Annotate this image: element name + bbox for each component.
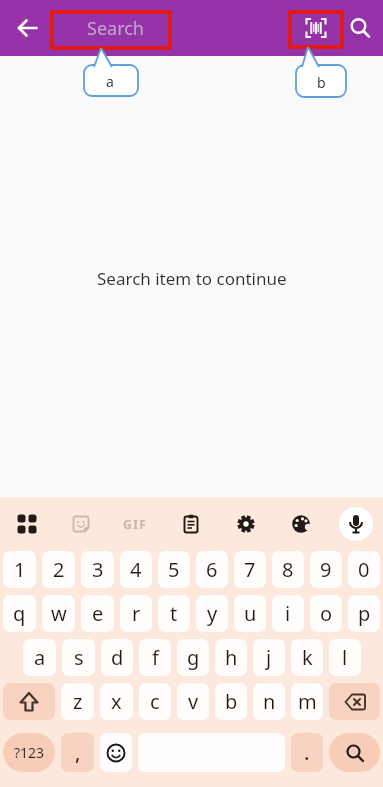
staticText: b: [225, 688, 238, 715]
button[interactable]: j: [253, 639, 285, 676]
staticText: z: [73, 688, 83, 715]
button[interactable]: [329, 733, 380, 772]
staticText: c: [150, 688, 160, 715]
button[interactable]: b: [215, 683, 247, 720]
button[interactable]: 0: [348, 551, 380, 588]
button[interactable]: k: [291, 639, 323, 676]
button[interactable]: h: [215, 639, 247, 676]
staticText: f: [152, 644, 159, 671]
staticText: g: [187, 644, 200, 671]
button[interactable]: [329, 683, 380, 720]
staticText: l: [342, 644, 348, 671]
button[interactable]: [218, 497, 273, 551]
button[interactable]: [4, 4, 52, 52]
staticText: t: [170, 600, 178, 627]
staticText: ?123: [14, 743, 45, 762]
button[interactable]: .: [291, 733, 323, 772]
staticText: Search: [87, 16, 144, 41]
staticText: r: [132, 600, 141, 627]
staticText: i: [285, 600, 291, 627]
button[interactable]: ?123: [3, 733, 55, 772]
button[interactable]: 6: [196, 551, 228, 588]
button[interactable]: 5: [158, 551, 190, 588]
button[interactable]: s: [62, 639, 95, 676]
button[interactable]: w: [42, 595, 75, 632]
button[interactable]: a: [23, 639, 56, 676]
staticText: w: [51, 600, 67, 627]
staticText: 0: [358, 556, 370, 583]
button[interactable]: 3: [81, 551, 114, 588]
staticText: a: [106, 72, 114, 91]
button[interactable]: 7: [234, 551, 266, 588]
button[interactable]: [293, 5, 339, 51]
button[interactable]: 4: [120, 551, 152, 588]
button[interactable]: i: [272, 595, 304, 632]
staticText: 2: [53, 556, 65, 583]
staticText: 3: [92, 556, 104, 583]
staticText: .: [304, 739, 310, 766]
button[interactable]: g: [177, 639, 209, 676]
staticText: 4: [130, 556, 142, 583]
button[interactable]: l: [329, 639, 361, 676]
staticText: s: [74, 644, 84, 671]
button[interactable]: [0, 497, 54, 551]
button[interactable]: GIF: [108, 497, 163, 551]
staticText: 7: [244, 556, 256, 583]
button[interactable]: t: [158, 595, 190, 632]
staticText: q: [13, 600, 26, 627]
button[interactable]: 8: [272, 551, 304, 588]
button[interactable]: [54, 497, 108, 551]
button[interactable]: [328, 497, 383, 551]
button[interactable]: z: [61, 683, 94, 720]
staticText: h: [225, 644, 238, 671]
button[interactable]: 1: [3, 551, 36, 588]
button[interactable]: [337, 5, 383, 51]
button[interactable]: r: [120, 595, 152, 632]
button[interactable]: c: [139, 683, 171, 720]
staticText: j: [266, 644, 272, 671]
button[interactable]: q: [3, 595, 36, 632]
staticText: b: [317, 73, 326, 92]
button[interactable]: p: [348, 595, 380, 632]
staticText: GIF: [123, 516, 148, 532]
button[interactable]: x: [100, 683, 133, 720]
staticText: m: [298, 688, 317, 715]
staticText: k: [302, 644, 313, 671]
button[interactable]: y: [196, 595, 228, 632]
staticText: u: [244, 600, 257, 627]
staticText: d: [111, 644, 124, 671]
staticText: Search item to continue: [97, 267, 287, 290]
staticText: 8: [282, 556, 294, 583]
staticText: v: [188, 688, 199, 715]
button[interactable]: [163, 497, 218, 551]
button[interactable]: e: [81, 595, 114, 632]
button[interactable]: d: [101, 639, 133, 676]
staticText: 5: [168, 556, 180, 583]
button[interactable]: o: [310, 595, 342, 632]
button[interactable]: 9: [310, 551, 342, 588]
staticText: 1: [14, 556, 26, 583]
button[interactable]: f: [139, 639, 171, 676]
button[interactable]: [3, 683, 55, 720]
button[interactable]: ,: [61, 733, 94, 772]
staticText: 6: [206, 556, 218, 583]
staticText: o: [320, 600, 333, 627]
staticText: 9: [320, 556, 332, 583]
button[interactable]: n: [253, 683, 285, 720]
button[interactable]: m: [291, 683, 323, 720]
button[interactable]: [273, 497, 328, 551]
button[interactable]: 2: [42, 551, 75, 588]
button[interactable]: v: [177, 683, 209, 720]
staticText: x: [111, 688, 122, 715]
button[interactable]: [100, 733, 132, 772]
staticText: n: [263, 688, 276, 715]
staticText: p: [358, 600, 371, 627]
staticText: a: [34, 644, 46, 671]
button[interactable]: u: [234, 595, 266, 632]
staticText: ,: [75, 739, 81, 766]
staticText: y: [207, 600, 218, 627]
staticText: e: [92, 600, 104, 627]
